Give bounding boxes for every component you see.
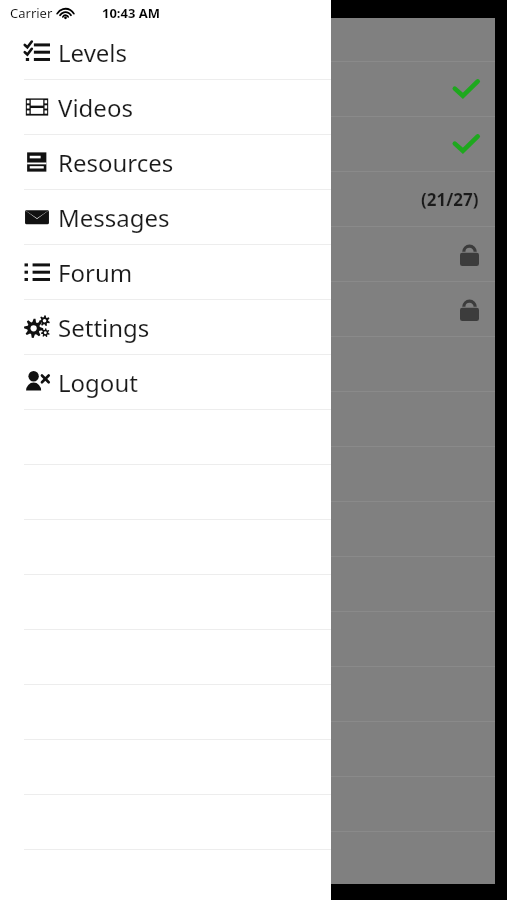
staticText: Carrier bbox=[10, 4, 53, 22]
button[interactable]: Logout bbox=[0, 355, 331, 410]
staticText: Logout bbox=[58, 366, 138, 399]
staticText: Levels bbox=[58, 36, 128, 69]
button[interactable]: Completed bbox=[331, 117, 495, 172]
button[interactable]: (21/27) bbox=[331, 172, 495, 227]
other: Locked bbox=[460, 298, 479, 321]
staticText: Resources bbox=[58, 146, 174, 179]
staticText: Settings bbox=[58, 311, 150, 344]
staticText: Videos bbox=[58, 91, 133, 124]
staticText: (21/27) bbox=[421, 188, 479, 211]
staticText: Forum bbox=[58, 256, 133, 289]
button[interactable]: Resources bbox=[0, 135, 331, 190]
staticText: Messages bbox=[58, 201, 170, 234]
button[interactable]: Levels bbox=[0, 25, 331, 80]
button[interactable]: Completed bbox=[331, 62, 495, 117]
button[interactable]: Locked bbox=[331, 282, 495, 337]
button[interactable]: Settings bbox=[0, 300, 331, 355]
other: Completed bbox=[453, 134, 479, 154]
other: Completed bbox=[453, 79, 479, 99]
button[interactable]: Forum bbox=[0, 245, 331, 300]
button[interactable]: Videos bbox=[0, 80, 331, 135]
staticText: 10:43 AM bbox=[102, 4, 161, 22]
other: Locked bbox=[460, 243, 479, 266]
button[interactable]: Locked bbox=[331, 227, 495, 282]
button[interactable]: Messages bbox=[0, 190, 331, 245]
